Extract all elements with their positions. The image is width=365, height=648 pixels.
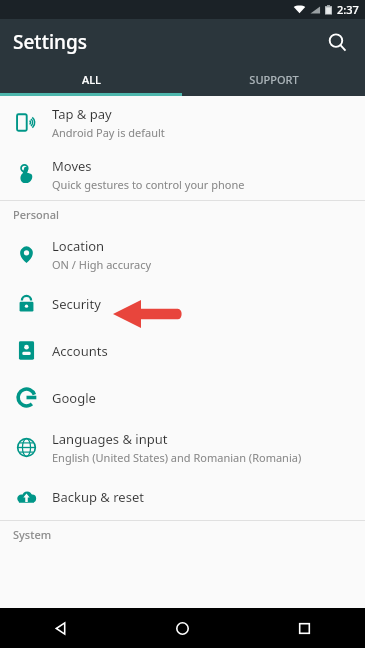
staticText: Location [52,237,105,255]
button[interactable]: ALL [0,65,182,93]
button[interactable]: Moves [0,148,365,200]
staticText: Accounts [52,342,108,360]
button[interactable]: Security [0,280,365,327]
staticText: SUPPORT [249,72,299,87]
staticText: Tap & pay [52,105,112,123]
button[interactable]: Tap & pay [0,96,365,148]
staticText: Quick gestures to control your phone [52,177,245,192]
button[interactable]: Home [121,608,243,648]
staticText: Settings [13,29,87,55]
staticText: English (United States) and Romanian (Ro… [52,450,302,465]
button[interactable]: Google [0,374,365,421]
button[interactable]: Backup & reset [0,473,365,520]
staticText: Android Pay is default [52,125,165,140]
button[interactable]: Recent apps [243,608,365,648]
button[interactable]: Search [317,22,357,62]
staticText: ALL [82,72,101,87]
staticText: 2:37 [337,2,359,17]
button[interactable]: Languages & input [0,421,365,473]
button[interactable]: Accounts [0,327,365,374]
button[interactable]: Location [0,228,365,280]
button[interactable]: SUPPORT [182,65,365,93]
staticText: Languages & input [52,430,168,448]
staticText: System [13,527,52,542]
staticText: ON / High accuracy [52,257,152,272]
button[interactable]: Back [0,608,121,648]
staticText: Personal [13,207,59,222]
staticText: Backup & reset [52,488,144,506]
staticText: Google [52,389,96,407]
staticText: Moves [52,157,92,175]
staticText: Security [52,295,101,313]
